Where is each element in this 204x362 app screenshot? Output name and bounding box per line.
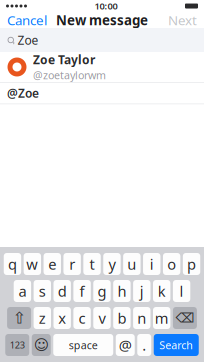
button[interactable]: t <box>83 253 101 275</box>
button[interactable]: g <box>93 280 111 302</box>
staticText: g <box>97 281 106 301</box>
button[interactable]: . <box>137 334 151 356</box>
staticText: n <box>137 308 146 328</box>
staticText: k <box>158 281 166 301</box>
staticText: Zoe <box>17 32 38 48</box>
staticText: h <box>117 281 126 301</box>
staticText: o <box>167 254 176 274</box>
button[interactable]: f <box>73 280 91 302</box>
staticText: Zoe Taylor <box>33 52 95 68</box>
button[interactable]: 123 <box>5 334 29 356</box>
staticText: @zoetaylorwm <box>33 68 106 82</box>
button[interactable]: k <box>153 280 170 302</box>
staticText: s <box>39 281 46 301</box>
button[interactable]: l <box>173 280 190 302</box>
button[interactable]: j <box>133 280 150 302</box>
button[interactable]: q <box>4 253 21 275</box>
button[interactable]: n <box>133 307 150 329</box>
staticText: z <box>39 308 46 328</box>
button[interactable]: Next <box>161 12 204 28</box>
staticText: Cancel <box>7 11 47 29</box>
button[interactable]: Zoe Taylor <box>0 52 204 83</box>
staticText: y <box>108 254 115 274</box>
staticText: . <box>142 335 146 355</box>
button[interactable]: Emoji <box>32 334 51 356</box>
staticText: space <box>69 338 98 352</box>
staticText: u <box>127 254 136 274</box>
button[interactable]: p <box>183 253 200 275</box>
staticText: c <box>79 308 86 328</box>
button[interactable]: space <box>53 334 113 356</box>
staticText: q <box>8 254 17 274</box>
staticText: Search <box>159 338 193 352</box>
staticText: f <box>80 281 85 301</box>
button[interactable]: v <box>93 307 111 329</box>
button[interactable]: u <box>123 253 140 275</box>
button[interactable]: m <box>153 307 170 329</box>
button[interactable]: @ <box>116 334 135 356</box>
button[interactable]: w <box>24 253 41 275</box>
staticText: New message <box>56 11 148 29</box>
button[interactable]: Zoe <box>0 28 204 52</box>
button[interactable]: Delete <box>173 307 197 329</box>
button[interactable]: i <box>143 253 160 275</box>
staticText: a <box>18 281 26 301</box>
button[interactable]: y <box>103 253 121 275</box>
staticText: l <box>180 281 184 301</box>
staticText: p <box>187 254 196 274</box>
staticText: @Zoe <box>7 85 39 101</box>
staticText: r <box>69 254 75 274</box>
staticText: t <box>89 254 94 274</box>
button[interactable]: x <box>53 307 71 329</box>
staticText: e <box>48 254 56 274</box>
staticText: Next <box>168 11 197 29</box>
button[interactable]: s <box>34 280 51 302</box>
staticText: j <box>140 281 144 301</box>
button[interactable]: Cancel <box>0 12 54 28</box>
staticText: v <box>98 308 105 328</box>
staticText: @ <box>119 335 132 355</box>
button[interactable]: Search <box>154 334 199 356</box>
staticText: ⌫ <box>175 310 194 325</box>
staticText: m <box>155 308 169 328</box>
button[interactable]: z <box>34 307 51 329</box>
button[interactable]: c <box>73 307 91 329</box>
staticText: w <box>26 254 38 274</box>
button[interactable]: b <box>113 307 131 329</box>
button[interactable]: e <box>43 253 61 275</box>
button[interactable]: @Zoe <box>0 83 204 104</box>
staticText: 123 <box>10 339 25 351</box>
staticText: b <box>117 308 126 328</box>
staticText: ☺ <box>34 337 49 353</box>
button[interactable]: o <box>163 253 180 275</box>
staticText: x <box>58 308 66 328</box>
button[interactable]: d <box>53 280 71 302</box>
staticText: d <box>58 281 67 301</box>
button[interactable]: h <box>113 280 131 302</box>
staticText: ⇧ <box>13 309 26 327</box>
staticText: 10:00 <box>94 0 117 12</box>
button[interactable]: a <box>14 280 31 302</box>
staticText: i <box>150 254 154 274</box>
button[interactable]: r <box>63 253 81 275</box>
button[interactable]: Shift <box>7 307 31 329</box>
